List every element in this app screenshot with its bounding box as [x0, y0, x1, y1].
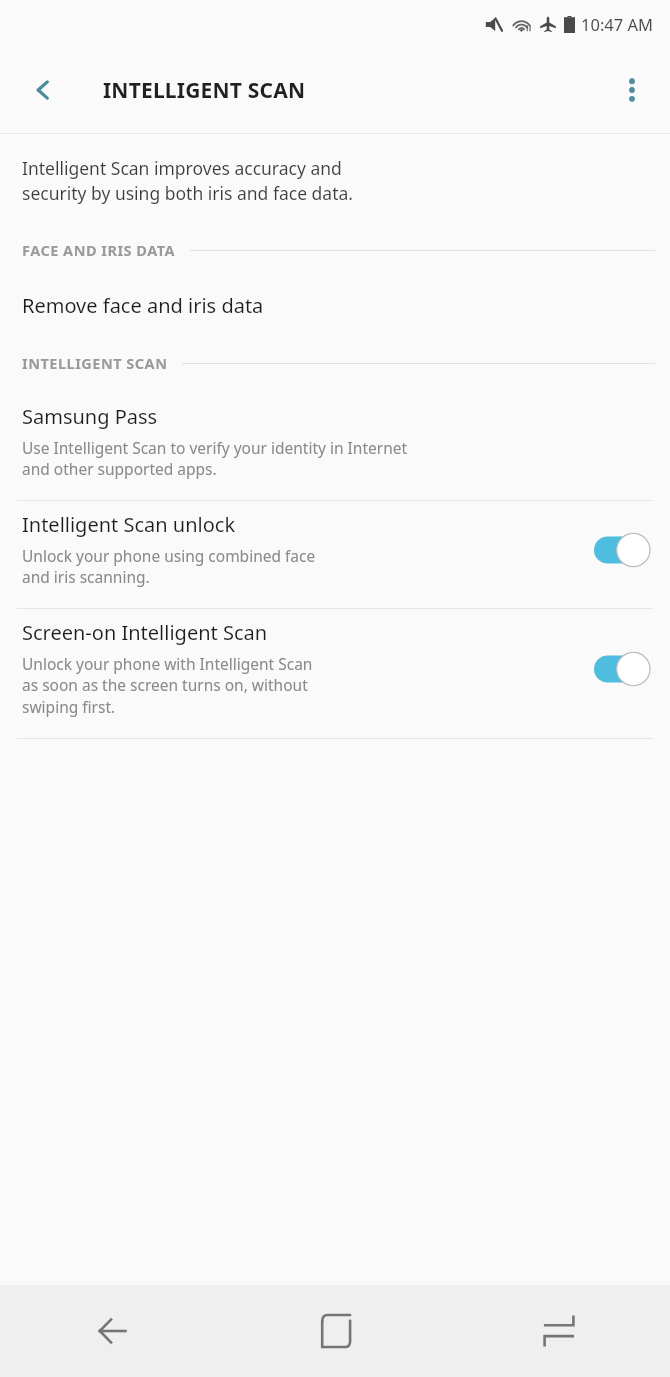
button[interactable]: Recent apps: [447, 1285, 670, 1377]
staticText: INTELLIGENT SCAN: [22, 353, 168, 373]
staticText: Unlock your phone with Intelligent Scan …: [22, 653, 313, 718]
button[interactable]: Intelligent Scan unlock: [0, 501, 670, 608]
staticText: INTELLIGENT SCAN: [103, 76, 306, 105]
staticText: Use Intelligent Scan to verify your iden…: [22, 437, 408, 480]
staticText: Intelligent Scan unlock: [22, 511, 236, 538]
button[interactable]: Back: [0, 1285, 224, 1377]
staticText: Remove face and iris data: [22, 292, 264, 319]
staticText: Screen-on Intelligent Scan: [22, 619, 268, 646]
staticText: Samsung Pass: [22, 403, 158, 430]
staticText: Intelligent Scan improves accuracy and s…: [22, 156, 353, 206]
button[interactable]: Back: [14, 61, 72, 119]
button[interactable]: Toggle: [594, 652, 650, 686]
staticText: Unlock your phone using combined face an…: [22, 545, 316, 588]
button[interactable]: Screen-on Intelligent Scan: [0, 609, 670, 738]
staticText: 10:47 AM: [581, 13, 653, 35]
button[interactable]: Remove face and iris data: [0, 286, 670, 325]
button[interactable]: Samsung Pass: [0, 395, 670, 500]
button[interactable]: Home: [224, 1285, 447, 1377]
button[interactable]: Toggle: [594, 533, 650, 567]
button[interactable]: More options: [604, 62, 660, 118]
staticText: FACE AND IRIS DATA: [22, 240, 176, 260]
